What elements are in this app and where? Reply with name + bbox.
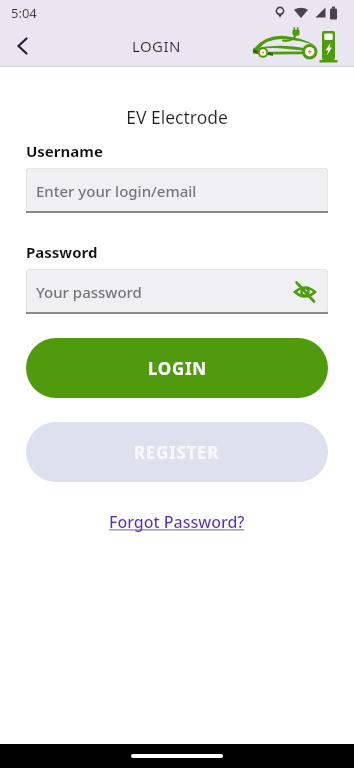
staticText: Your password [36,282,142,302]
button[interactable]: Enter your login/email [26,168,328,213]
button[interactable]: Your password [26,269,328,314]
staticText: EV Electrode [0,105,354,129]
staticText: LOGIN [132,36,181,56]
button[interactable]: REGISTER [26,422,328,482]
staticText: REGISTER [134,441,220,464]
staticText: 5:04 [11,4,37,22]
button[interactable]: Forgot Password? [109,511,245,533]
staticText: Password [26,242,98,262]
button[interactable] [6,29,40,63]
staticText: Username [26,141,103,161]
button[interactable]: LOGIN [26,338,328,398]
staticText: LOGIN [148,357,207,380]
staticText: Enter your login/email [36,181,197,201]
button[interactable] [292,279,318,305]
